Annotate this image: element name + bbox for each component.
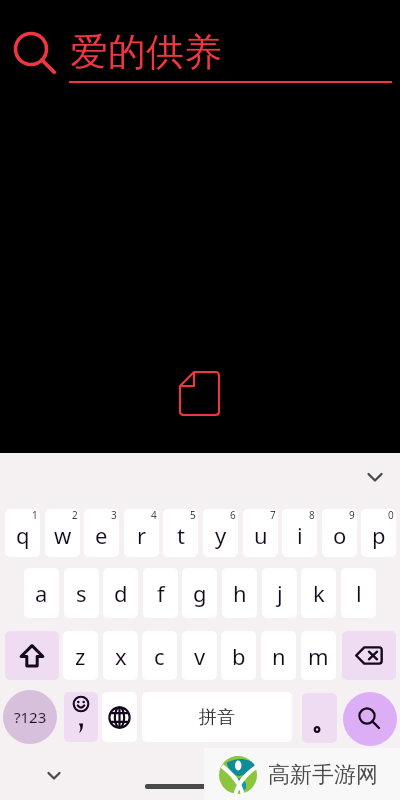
staticText: l [356, 578, 362, 608]
staticText: n [272, 641, 286, 671]
button[interactable]: r [124, 509, 159, 557]
staticText: 1 [32, 509, 38, 522]
staticText: e [95, 520, 108, 550]
button[interactable]: c [142, 631, 177, 680]
staticText: a [35, 578, 48, 608]
button[interactable]: d [103, 568, 138, 618]
button[interactable]: w [45, 509, 80, 557]
button[interactable]: g [182, 568, 217, 618]
button[interactable]: t [163, 509, 198, 557]
staticText: j [277, 578, 283, 608]
staticText: k [313, 578, 325, 608]
staticText: f [157, 578, 165, 608]
staticText: r [137, 520, 147, 550]
button[interactable]: n [261, 631, 296, 680]
staticText: h [233, 578, 247, 608]
button[interactable]: Search [9, 25, 59, 75]
button[interactable]: 拼音 [142, 692, 292, 742]
staticText: 9 [349, 509, 355, 522]
button[interactable]: Change language [102, 692, 137, 742]
staticText: 5 [190, 509, 196, 522]
button[interactable]: l [341, 568, 376, 618]
button[interactable]: Symbols [3, 690, 57, 744]
staticText: q [16, 520, 30, 550]
staticText: t [177, 520, 185, 550]
button[interactable]: Backspace [342, 631, 396, 680]
staticText: v [194, 641, 206, 671]
button[interactable]: x [103, 631, 138, 680]
staticText: y [215, 520, 227, 550]
button[interactable]: e [84, 509, 119, 557]
button[interactable]: q [5, 509, 40, 557]
button[interactable]: j [262, 568, 297, 618]
button[interactable]: v [182, 631, 217, 680]
staticText: c [154, 641, 165, 671]
staticText: 爱的供养 [70, 28, 222, 76]
button[interactable]: Search [343, 692, 397, 746]
staticText: 4 [151, 509, 157, 522]
button[interactable]: u [243, 509, 278, 557]
staticText: 2 [72, 509, 78, 522]
staticText: b [232, 641, 246, 671]
staticText: ?123 [14, 707, 47, 727]
staticText: 拼音 [199, 706, 235, 729]
staticText: 0 [388, 509, 394, 522]
staticText: g [193, 578, 207, 608]
staticText: z [75, 641, 86, 671]
staticText: u [254, 520, 268, 550]
button[interactable]: m [301, 631, 336, 680]
staticText: d [114, 578, 128, 608]
button[interactable]: Shift [5, 631, 59, 680]
button[interactable]: k [301, 568, 336, 618]
staticText: m [308, 641, 329, 671]
staticText: x [115, 641, 127, 671]
button[interactable]: p [361, 509, 396, 557]
staticText: 高新手游网 [268, 761, 378, 789]
button[interactable]: b [221, 631, 256, 680]
staticText: o [333, 520, 347, 550]
staticText: p [372, 520, 386, 550]
staticText: 3 [111, 509, 117, 522]
button[interactable]: Period [302, 693, 337, 743]
button[interactable]: Hide keyboard [38, 759, 70, 791]
button[interactable]: i [282, 509, 317, 557]
button[interactable]: Collapse keyboard [357, 458, 393, 494]
button[interactable]: y [203, 509, 238, 557]
button[interactable]: Emoji and comma [64, 692, 98, 742]
staticText: i [297, 520, 303, 550]
staticText: s [76, 578, 87, 608]
staticText: 6 [230, 509, 236, 522]
staticText: w [54, 520, 72, 550]
button[interactable]: z [63, 631, 98, 680]
button[interactable]: s [64, 568, 99, 618]
staticText: 7 [270, 509, 276, 522]
button[interactable]: f [143, 568, 178, 618]
button[interactable]: a [24, 568, 59, 618]
staticText: 8 [309, 509, 315, 522]
button[interactable]: o [322, 509, 357, 557]
button[interactable]: h [222, 568, 257, 618]
